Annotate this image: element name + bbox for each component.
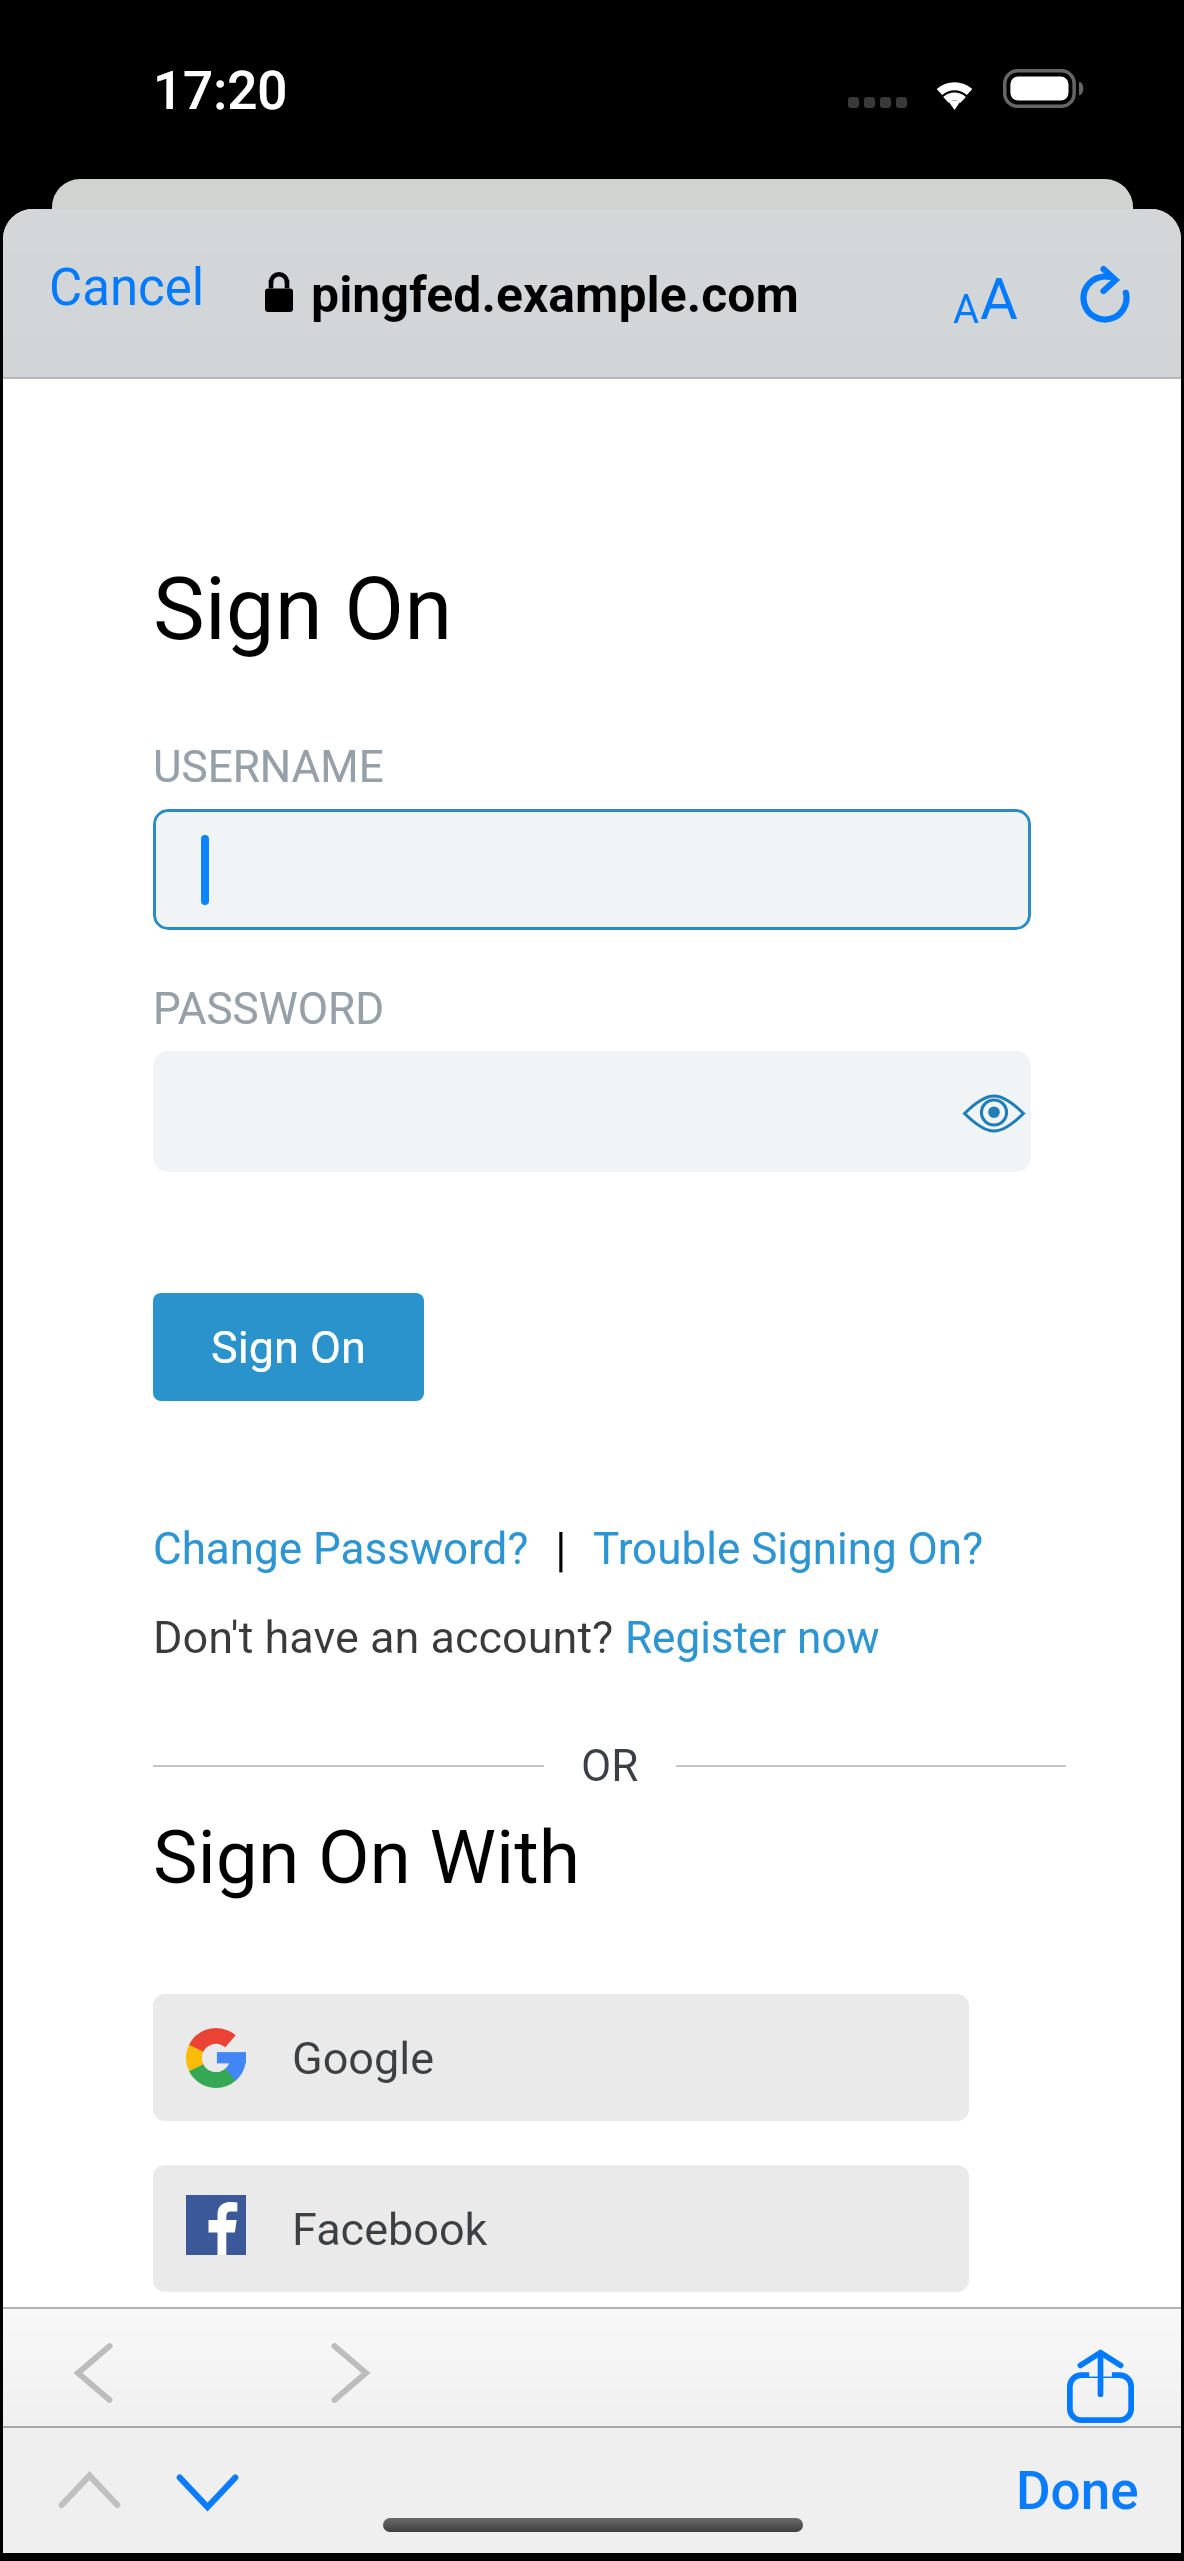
- button[interactable]: [153, 809, 1031, 930]
- button[interactable]: Share: [1067, 2351, 1134, 2423]
- staticText: Trouble Signing On?: [593, 1523, 983, 1575]
- button[interactable]: Show password: [963, 1097, 1025, 1130]
- button[interactable]: Forward: [311, 2334, 389, 2412]
- staticText: Change Password?: [153, 1523, 529, 1575]
- staticText: Sign On With: [153, 1813, 581, 1901]
- button[interactable]: Show password: [153, 1051, 1031, 1172]
- staticText: Google: [292, 2032, 435, 2085]
- button[interactable]: Reload page: [1073, 258, 1139, 324]
- button[interactable]: Text size options: [953, 265, 1018, 333]
- button[interactable]: Google: [153, 1994, 969, 2121]
- staticText: Facebook: [292, 2203, 488, 2256]
- staticText: 17:20: [153, 60, 288, 122]
- staticText: USERNAME: [153, 741, 384, 793]
- button[interactable]: Back: [55, 2334, 133, 2412]
- staticText: Register now: [625, 1612, 880, 1664]
- staticText: |: [555, 1521, 567, 1577]
- button[interactable]: Previous field: [52, 2456, 127, 2526]
- button[interactable]: Trouble Signing On?: [593, 1523, 983, 1575]
- staticText: Done: [1016, 2460, 1139, 2522]
- staticText: Cancel: [49, 258, 205, 318]
- staticText: PASSWORD: [153, 983, 385, 1035]
- staticText: A: [980, 265, 1018, 333]
- staticText: Sign On: [211, 1321, 366, 1374]
- button[interactable]: Facebook: [153, 2165, 969, 2292]
- button[interactable]: Register now: [625, 1612, 880, 1664]
- staticText: A: [953, 286, 980, 333]
- staticText: OR: [581, 1740, 639, 1792]
- button[interactable]: Done: [1016, 2460, 1139, 2522]
- button[interactable]: Cancel: [49, 258, 205, 318]
- button[interactable]: Sign On: [153, 1293, 424, 1401]
- button[interactable]: Change Password?: [153, 1523, 529, 1575]
- button[interactable]: Next field: [170, 2458, 245, 2528]
- staticText: Sign On: [153, 558, 453, 660]
- staticText: Don't have an account?: [153, 1611, 625, 1664]
- staticText: pingfed.example.com: [311, 266, 799, 325]
